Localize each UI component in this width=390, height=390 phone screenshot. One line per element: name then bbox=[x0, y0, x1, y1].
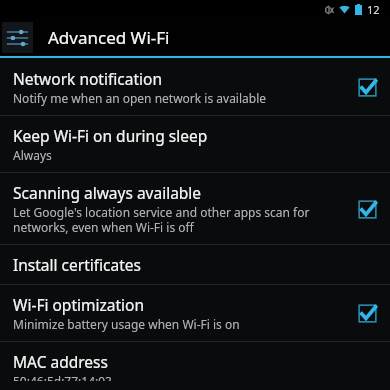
button[interactable]: Install certificates bbox=[0, 245, 390, 284]
staticText: 50:46:5d:77:14:93 bbox=[13, 373, 112, 381]
staticText: Advanced Wi-Fi bbox=[48, 26, 170, 49]
staticText: Install certificates bbox=[13, 254, 141, 275]
staticText: Keep Wi-Fi on during sleep bbox=[13, 125, 208, 146]
button[interactable]: MAC address bbox=[0, 342, 390, 390]
staticText: Minimize battery usage when Wi-Fi is on bbox=[13, 316, 240, 332]
staticText: Network notification bbox=[13, 68, 162, 89]
button[interactable]: Toggle setting bbox=[356, 302, 378, 324]
staticText: Scanning always available bbox=[13, 182, 202, 203]
button[interactable]: Network notification bbox=[0, 59, 390, 115]
button[interactable]: Keep Wi-Fi on during sleep bbox=[0, 116, 390, 172]
staticText: Let Google's location service and other … bbox=[13, 204, 346, 235]
button[interactable]: Toggle setting bbox=[356, 198, 378, 220]
staticText: Wi-Fi optimization bbox=[13, 294, 145, 315]
staticText: MAC address bbox=[13, 351, 108, 372]
button[interactable]: Toggle setting bbox=[356, 76, 378, 98]
staticText: Notify me when an open network is availa… bbox=[13, 90, 267, 106]
button[interactable]: Wi-Fi optimization bbox=[0, 285, 390, 341]
button[interactable]: Scanning always available bbox=[0, 173, 390, 244]
button[interactable]: Advanced Wi-Fi, navigate up bbox=[0, 18, 390, 56]
staticText: 12 bbox=[367, 2, 380, 17]
staticText: Always bbox=[13, 147, 52, 163]
